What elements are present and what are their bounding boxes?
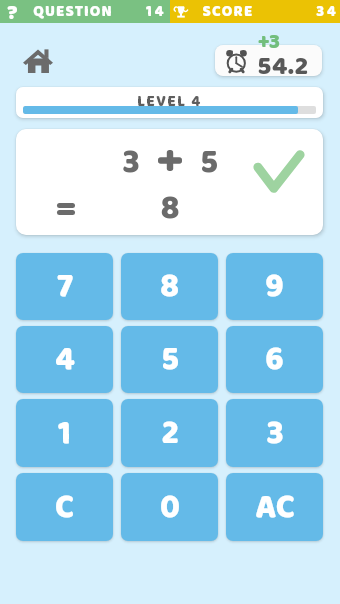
staticText: 8 xyxy=(160,260,179,313)
button[interactable]: 4 xyxy=(16,326,113,393)
staticText: 14 xyxy=(146,0,166,23)
staticText: 6 xyxy=(265,333,284,386)
button[interactable]: 3 xyxy=(226,399,323,467)
staticText: 0 xyxy=(160,481,180,534)
button[interactable]: 2 xyxy=(121,399,218,467)
staticText: SCORE xyxy=(202,0,254,23)
button[interactable]: 8 xyxy=(121,253,218,320)
staticText: 9 xyxy=(265,260,284,313)
button[interactable]: 1 xyxy=(16,399,113,467)
staticText: 54.2 xyxy=(257,46,309,76)
staticText: C xyxy=(55,481,74,534)
staticText: 7 xyxy=(57,260,73,313)
staticText: 5 xyxy=(161,333,179,386)
staticText: 34 xyxy=(316,0,339,23)
staticText: 1 xyxy=(58,407,71,460)
staticText: 4 xyxy=(55,333,75,386)
button[interactable]: C xyxy=(16,473,113,541)
button[interactable]: 5 xyxy=(121,326,218,393)
staticText: 8 xyxy=(156,182,184,235)
staticText: LEVEL 4 xyxy=(137,90,202,114)
button[interactable]: ? xyxy=(0,0,170,23)
button[interactable]: 54.2 xyxy=(215,45,322,76)
button[interactable]: SCORE xyxy=(170,0,340,23)
staticText: 3 xyxy=(266,407,284,460)
staticText: 3 xyxy=(117,136,145,189)
button[interactable]: 9 xyxy=(226,253,323,320)
staticText: +3 xyxy=(258,25,280,59)
button[interactable]: 6 xyxy=(226,326,323,393)
button[interactable]: 0 xyxy=(121,473,218,541)
button[interactable]: Home xyxy=(23,48,53,73)
staticText: 5 xyxy=(195,136,223,189)
staticText: ? xyxy=(7,0,18,19)
staticText: QUESTION xyxy=(33,0,113,23)
button[interactable]: AC xyxy=(226,473,323,541)
staticText: 2 xyxy=(161,407,179,460)
staticText: AC xyxy=(255,481,295,534)
button[interactable]: 7 xyxy=(16,253,113,320)
